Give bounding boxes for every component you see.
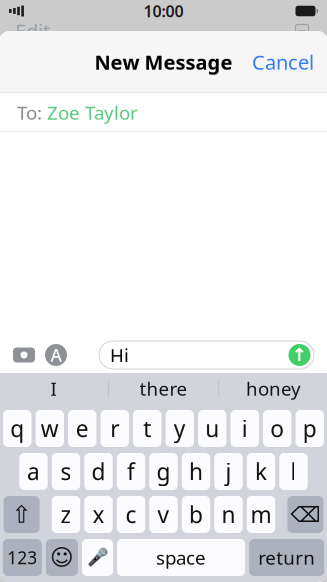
staticText: Hi <box>110 343 129 367</box>
button[interactable]: Cancel <box>238 40 327 84</box>
staticText: return <box>258 545 315 570</box>
button[interactable]: y <box>166 410 194 447</box>
staticText: Cancel <box>252 49 314 75</box>
button[interactable]: z <box>52 496 80 533</box>
button[interactable]: Dictation <box>82 539 113 576</box>
staticText: l <box>290 456 296 486</box>
staticText: New Message <box>94 49 232 75</box>
staticText: d <box>91 456 105 486</box>
staticText: f <box>127 456 135 486</box>
staticText: r <box>110 413 119 443</box>
button[interactable]: a <box>19 453 48 490</box>
button[interactable]: h <box>182 453 210 490</box>
staticText: there <box>139 376 187 401</box>
staticText: t <box>143 413 151 443</box>
button[interactable]: r <box>101 410 129 447</box>
button[interactable]: e <box>68 410 96 447</box>
staticText: h <box>189 456 203 486</box>
staticText: k <box>255 456 267 486</box>
button[interactable]: b <box>182 496 210 533</box>
staticText: s <box>60 456 71 486</box>
staticText: z <box>60 499 71 529</box>
button[interactable]: Delete <box>287 496 323 533</box>
button[interactable]: 123 <box>3 539 42 576</box>
staticText: m <box>250 499 271 529</box>
staticText: w <box>41 413 59 443</box>
button[interactable]: honey <box>219 373 327 404</box>
button[interactable]: Shift <box>4 496 40 533</box>
staticText: space <box>156 545 206 570</box>
staticText: honey <box>246 376 301 401</box>
staticText: I <box>51 376 57 401</box>
staticText: Zoe Taylor <box>47 100 138 125</box>
button[interactable]: t <box>133 410 161 447</box>
staticText: e <box>76 413 89 443</box>
staticText: u <box>205 413 219 443</box>
button[interactable]: Send <box>287 342 312 368</box>
button[interactable]: v <box>149 496 178 533</box>
button[interactable]: i <box>231 410 259 447</box>
button[interactable]: o <box>263 410 291 447</box>
staticText: 🎤 <box>86 548 108 567</box>
staticText: 10:00 <box>143 0 183 22</box>
staticText: o <box>270 413 284 443</box>
staticText: v <box>157 499 169 529</box>
button[interactable]: return <box>249 539 324 576</box>
staticText: c <box>125 499 136 529</box>
button[interactable]: c <box>117 496 145 533</box>
button[interactable]: d <box>84 453 113 490</box>
button[interactable]: w <box>36 410 64 447</box>
staticText: ↑ <box>291 344 307 366</box>
button[interactable]: m <box>247 496 275 533</box>
staticText: y <box>174 413 186 443</box>
button[interactable]: j <box>214 453 243 490</box>
staticText: i <box>242 413 248 443</box>
button[interactable]: Camera <box>7 338 41 372</box>
button[interactable]: s <box>52 453 80 490</box>
button[interactable]: p <box>296 410 324 447</box>
staticText: q <box>10 413 24 443</box>
staticText: ☺ <box>50 545 74 570</box>
staticText: ⇧ <box>12 501 32 528</box>
staticText: a <box>27 456 40 486</box>
button[interactable]: u <box>198 410 226 447</box>
staticText: x <box>92 499 104 529</box>
staticText: n <box>221 499 235 529</box>
button[interactable]: k <box>247 453 275 490</box>
button[interactable]: n <box>214 496 243 533</box>
button[interactable]: g <box>149 453 178 490</box>
staticText: p <box>303 413 317 443</box>
staticText: g <box>156 456 170 486</box>
button[interactable]: x <box>84 496 113 533</box>
button[interactable]: Apps <box>41 338 71 372</box>
staticText: ⌫ <box>290 502 320 527</box>
button[interactable]: l <box>279 453 308 490</box>
button[interactable]: space <box>117 539 245 576</box>
button[interactable]: I <box>0 373 108 404</box>
staticText: Edit <box>15 18 50 44</box>
staticText: 123 <box>7 546 37 569</box>
staticText: j <box>225 456 231 486</box>
button[interactable]: q <box>3 410 31 447</box>
staticText: To: <box>17 100 42 125</box>
button[interactable]: f <box>117 453 145 490</box>
staticText: A <box>50 343 61 366</box>
staticText: b <box>189 499 203 529</box>
button[interactable]: there <box>109 373 218 404</box>
button[interactable]: Emoji <box>46 539 78 576</box>
